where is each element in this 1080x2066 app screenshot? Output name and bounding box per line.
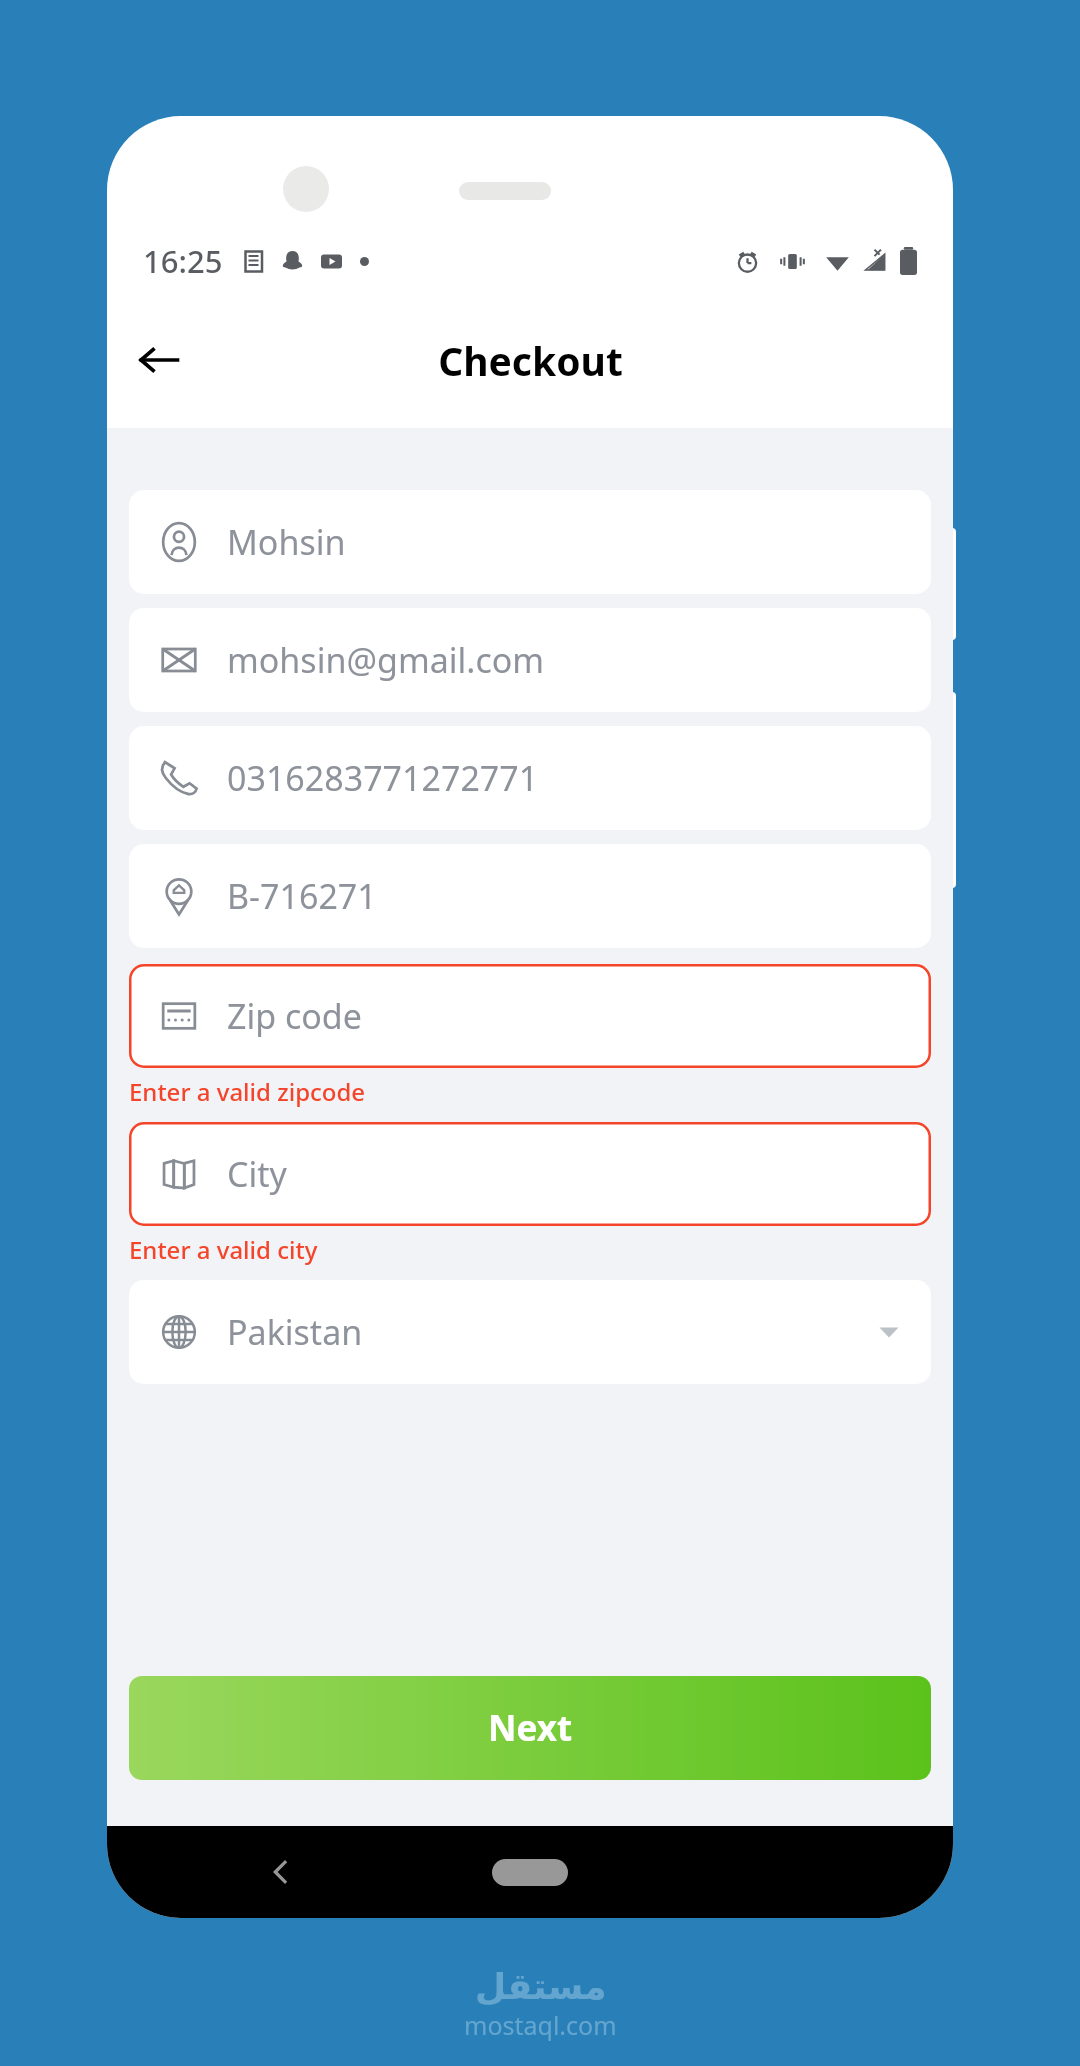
staticText: 0316283771272771 [227, 755, 539, 801]
staticText: Pakistan [227, 1309, 363, 1355]
staticText: 16:25 [143, 240, 223, 282]
button[interactable]: Back [127, 328, 191, 392]
staticText: مستقل [475, 1966, 607, 2008]
button[interactable]: Pakistan [129, 1280, 931, 1384]
button[interactable]: Back [253, 1844, 309, 1900]
staticText: Enter a valid zipcode [129, 1075, 366, 1108]
staticText: Mohsin [227, 519, 346, 565]
staticText: Zip code [227, 993, 362, 1039]
button[interactable]: 0316283771272771 [129, 726, 931, 830]
staticText: mohsin@gmail.com [227, 637, 545, 683]
staticText: City [227, 1151, 287, 1197]
staticText: Checkout [438, 334, 623, 387]
staticText: Enter a valid city [129, 1233, 318, 1266]
button[interactable]: City [129, 1122, 931, 1226]
button[interactable]: B-716271 [129, 844, 931, 948]
button[interactable]: Zip code [129, 964, 931, 1068]
staticText: Next [488, 1704, 573, 1752]
button[interactable]: mohsin@gmail.com [129, 608, 931, 712]
button[interactable]: Mohsin [129, 490, 931, 594]
staticText: B-716271 [227, 873, 377, 919]
button[interactable]: Home [492, 1859, 568, 1886]
staticText: mostaql.com [464, 2008, 617, 2042]
button[interactable]: Next [129, 1676, 931, 1780]
